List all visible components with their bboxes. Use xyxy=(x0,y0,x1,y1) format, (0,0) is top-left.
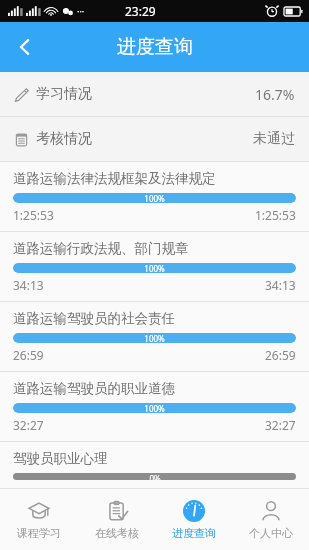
button[interactable]: 考核情况 xyxy=(0,117,309,161)
staticText: 道路运输驾驶员的社会责任 xyxy=(13,310,175,327)
staticText: 进度查询 xyxy=(117,35,193,59)
staticText: 100% xyxy=(144,333,165,343)
staticText: 0% xyxy=(149,473,161,480)
staticText: 1:25:53 xyxy=(13,207,54,223)
button[interactable]: 在线考核 xyxy=(78,489,155,550)
button[interactable]: 道路运输驾驶员的职业道德 xyxy=(0,372,309,441)
staticText: 34:13 xyxy=(265,277,296,293)
button[interactable]: 驾驶员职业心理 xyxy=(0,442,309,488)
staticText: ··· xyxy=(77,5,85,17)
staticText: 1:25:53 xyxy=(255,207,296,223)
staticText: 32:27 xyxy=(13,417,44,433)
staticText: 100% xyxy=(144,263,165,273)
button[interactable]: 进度查询 xyxy=(155,489,232,550)
staticText: 考核情况 xyxy=(36,130,92,148)
staticText: 100% xyxy=(144,403,165,413)
button[interactable]: 道路运输行政法规、部门规章 xyxy=(0,232,309,301)
button[interactable]: 课程学习 xyxy=(0,489,78,550)
staticText: 23:29 xyxy=(125,3,156,19)
button[interactable]: 个人中心 xyxy=(232,489,309,550)
staticText: 在线考核 xyxy=(95,526,139,540)
staticText: 34:13 xyxy=(13,277,44,293)
staticText: 26:59 xyxy=(265,347,296,363)
button[interactable]: Back xyxy=(0,22,50,72)
button[interactable]: 道路运输驾驶员的社会责任 xyxy=(0,302,309,371)
staticText: 未通过 xyxy=(253,130,295,148)
staticText: 驾驶员职业心理 xyxy=(13,450,108,467)
staticText: 学习情况 xyxy=(36,85,92,103)
staticText: 道路运输法律法规框架及法律规定 xyxy=(13,170,216,187)
button[interactable]: 道路运输法律法规框架及法律规定 xyxy=(0,162,309,231)
staticText: 道路运输驾驶员的职业道德 xyxy=(13,380,175,397)
staticText: 课程学习 xyxy=(17,526,61,540)
staticText: 100% xyxy=(144,193,165,203)
staticText: 道路运输行政法规、部门规章 xyxy=(13,240,189,257)
staticText: 32:27 xyxy=(265,417,296,433)
button[interactable]: 学习情况 xyxy=(0,72,309,116)
staticText: 进度查询 xyxy=(172,526,216,540)
staticText: 个人中心 xyxy=(249,526,293,540)
staticText: 26:59 xyxy=(13,347,44,363)
staticText: 16.7% xyxy=(255,85,295,104)
